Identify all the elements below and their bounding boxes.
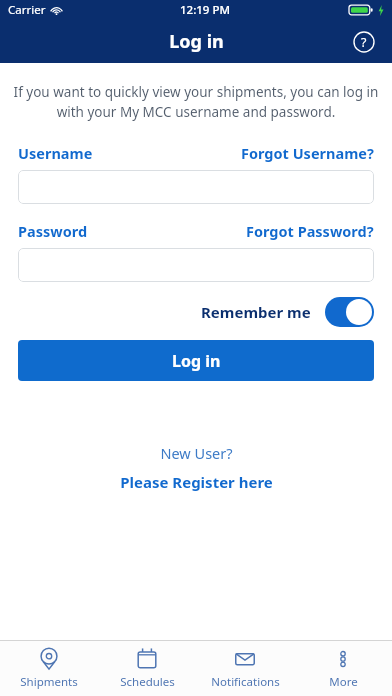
button[interactable] [18, 248, 374, 282]
staticText: Notifications [211, 674, 280, 690]
staticText: Log in [169, 29, 224, 54]
button[interactable]: Password [18, 221, 88, 241]
staticText: More [329, 674, 358, 690]
button[interactable]: More [294, 641, 392, 696]
button[interactable]: Notifications [196, 641, 294, 696]
staticText: Log in [172, 350, 221, 372]
staticText: 12:19 PM [180, 2, 231, 18]
button[interactable]: Username [18, 143, 93, 163]
button[interactable]: Remember me [201, 297, 374, 327]
button[interactable]: Please Register here [120, 472, 273, 492]
button[interactable]: Log in [18, 340, 374, 381]
staticText: If you want to quickly view your shipmen… [13, 83, 379, 121]
staticText: Carrier [8, 2, 46, 18]
staticText: ? [361, 34, 367, 51]
staticText: Shipments [20, 674, 78, 690]
staticText: Schedules [120, 674, 175, 690]
button[interactable]: Forgot Username? [241, 143, 374, 163]
button[interactable]: Schedules [98, 641, 196, 696]
staticText: Remember me [201, 302, 311, 322]
button[interactable]: Forgot Password? [246, 221, 374, 241]
button[interactable]: Shipments [0, 641, 98, 696]
staticText: New User? [160, 443, 233, 463]
button[interactable]: Help [350, 28, 378, 56]
button[interactable] [18, 170, 374, 204]
